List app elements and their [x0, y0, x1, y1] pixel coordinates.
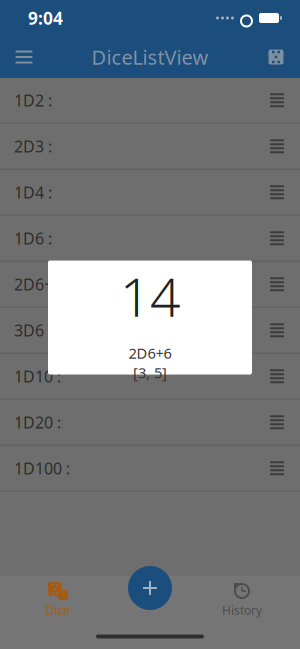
staticText: 1D2 :: [14, 90, 52, 111]
button[interactable]: 1D6 :: [0, 216, 300, 260]
button[interactable]: 1D2 :: [0, 78, 300, 122]
staticText: History: [222, 602, 262, 618]
button[interactable]: 1D20 :: [0, 400, 300, 444]
staticText: 1D10 :: [14, 366, 61, 387]
staticText: 14: [120, 261, 180, 331]
staticText: 2D6+6: [128, 343, 171, 363]
staticText: 1D20 :: [14, 412, 61, 433]
button[interactable]: Roll dice: [255, 36, 297, 78]
button[interactable]: Dice: [18, 579, 98, 621]
staticText: DiceListView: [91, 44, 208, 70]
staticText: 1D100 :: [14, 458, 70, 479]
staticText: [3, 5]: [133, 363, 167, 382]
staticText: 2D6+6 :: [14, 274, 70, 295]
staticText: 2D3 :: [14, 136, 52, 157]
button[interactable]: 3D6 :: [0, 308, 300, 352]
staticText: 3D6 :: [14, 320, 52, 341]
button[interactable]: 2D3 :: [0, 124, 300, 168]
button[interactable]: 1D100 :: [0, 446, 300, 490]
button[interactable]: History: [202, 579, 282, 621]
staticText: 1D4 :: [14, 182, 52, 203]
button[interactable]: 2D6+6 :: [0, 262, 300, 306]
staticText: 9:04: [28, 6, 63, 29]
button[interactable]: Add dice: [124, 562, 176, 614]
button[interactable]: Menu: [3, 36, 45, 78]
button[interactable]: 1D4 :: [0, 170, 300, 214]
staticText: Dice: [45, 602, 70, 618]
staticText: 1D6 :: [14, 228, 52, 249]
button[interactable]: 1D10 :: [0, 354, 300, 398]
